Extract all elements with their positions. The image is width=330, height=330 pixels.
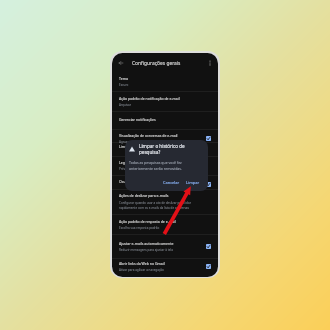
button[interactable]: Abrir links da Web no Gmail — [112, 258, 218, 274]
button[interactable]: Back — [115, 57, 127, 69]
button[interactable]: Ação padrão de notificação de e-mail — [112, 93, 218, 108]
staticText: Configurações gerais — [132, 60, 181, 67]
staticText: Prévia da mensagem — [119, 167, 149, 171]
button[interactable]: Gerenciar notificações — [112, 114, 218, 124]
staticText: Abrir links da Web no Gmail — [119, 261, 165, 266]
staticText: Ação padrão de resposta de e-mail — [119, 219, 176, 224]
staticText: Ocultar imagens externas — [119, 179, 162, 184]
button[interactable]: Ações de deslizar para e-mails — [112, 190, 218, 207]
staticText: rapidamente com os e-mails da lista de c… — [119, 206, 189, 210]
staticText: Ajustar e-mails automaticamente — [119, 241, 174, 246]
staticText: Escolha sua resposta padrão — [119, 226, 160, 230]
staticText: Escuro — [119, 83, 129, 87]
staticText: Legendas de mensagens — [119, 160, 160, 165]
staticText: Limpar — [186, 180, 200, 185]
button[interactable]: Legendas de mensagens — [112, 157, 218, 173]
button[interactable]: Ajustar e-mails automaticamente — [112, 238, 218, 254]
button[interactable]: Ocultar imagens externas — [112, 176, 218, 186]
button[interactable]: More options — [204, 57, 216, 69]
staticText: Ação padrão de notificação de e-mail — [119, 96, 180, 101]
staticText: Todas as pesquisas que você fez anterior… — [129, 160, 182, 171]
button[interactable]: Tema — [112, 73, 218, 88]
staticText: Ativar para agilizar a navegação — [119, 268, 164, 272]
button[interactable]: Ação padrão de resposta de e-mail — [112, 216, 218, 232]
button[interactable]: Limpar histórico de pesquisa — [112, 141, 218, 151]
staticText: Configurar quando usar a ato de deslizar… — [119, 201, 191, 205]
staticText: Tema — [119, 76, 128, 81]
button[interactable]: Visualização de conversas de e-mail — [112, 130, 218, 146]
staticText: Visualização de conversas de e-mail — [119, 133, 178, 138]
staticText: Reduzir mensagens para ajustar à tela — [119, 248, 173, 252]
staticText: Arquivar — [119, 103, 132, 107]
staticText: Limpar histórico de pesquisa — [119, 144, 167, 149]
button[interactable]: Limpar — [184, 179, 202, 186]
staticText: Limpar o histórico de pesquisa? — [139, 143, 185, 155]
staticText: Ações de deslizar para e-mails — [119, 193, 169, 198]
staticText: Cancelar — [163, 180, 180, 185]
staticText: Agrupar — [119, 140, 131, 144]
button[interactable]: Cancelar — [161, 179, 182, 186]
staticText: Gerenciar notificações — [119, 117, 156, 122]
